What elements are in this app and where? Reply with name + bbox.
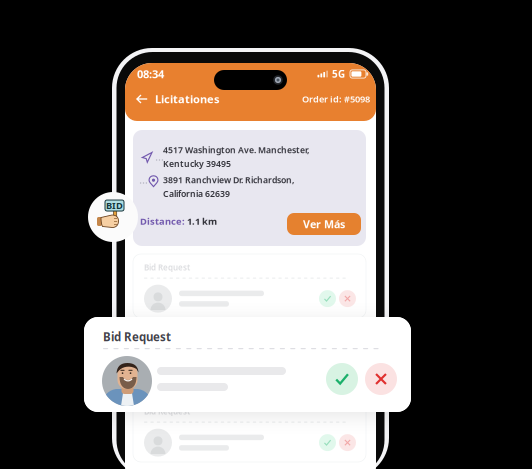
staticText: California 62639: [163, 188, 230, 200]
button[interactable]: Decline bid request: [365, 363, 397, 395]
staticText: Order id: #5098: [302, 93, 370, 105]
staticText: Bid Request: [144, 334, 190, 345]
staticText: BID: [106, 199, 123, 212]
staticText: Kentucky 39495: [163, 158, 231, 170]
staticText: Bid Request: [144, 262, 190, 273]
staticText: 08:34: [137, 66, 164, 82]
button[interactable]: Back: [125, 89, 152, 109]
staticText: Bid Request: [103, 329, 171, 345]
button[interactable]: Accept bid request: [326, 363, 358, 395]
staticText: Ver Más: [303, 217, 345, 231]
button[interactable]: Ver Más: [287, 213, 361, 235]
staticText: 1.1 km: [185, 215, 217, 227]
staticText: Distance:: [140, 215, 185, 227]
staticText: 5G: [332, 67, 345, 81]
staticText: 4517 Washington Ave. Manchester,: [163, 144, 309, 156]
staticText: Bid Request: [144, 406, 190, 417]
staticText: Licitationes: [155, 91, 220, 107]
staticText: 3891 Ranchview Dr. Richardson,: [163, 174, 294, 186]
